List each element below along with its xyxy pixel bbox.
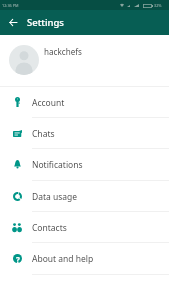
button[interactable]: Chats [0, 117, 169, 148]
button[interactable]: Notifications [0, 148, 169, 180]
button[interactable]: hackchefs [0, 35, 169, 86]
staticText: 32% [154, 3, 162, 8]
button[interactable]: Contacts [0, 211, 169, 242]
staticText: hackchefs [44, 46, 82, 57]
staticText: Account [32, 97, 65, 109]
staticText: Contacts [32, 222, 67, 234]
staticText: Chats [32, 128, 55, 140]
button[interactable]: Account [0, 86, 169, 117]
staticText: About and help [32, 253, 94, 265]
staticText: Data usage [32, 191, 78, 203]
staticText: ? [16, 254, 20, 263]
button[interactable]: Data usage [0, 180, 169, 211]
staticText: Settings [27, 16, 64, 29]
button[interactable]: ? [0, 242, 169, 274]
staticText: Notifications [32, 159, 83, 171]
button[interactable]: Back [1, 10, 25, 34]
staticText: 12:36 PM [2, 3, 19, 8]
